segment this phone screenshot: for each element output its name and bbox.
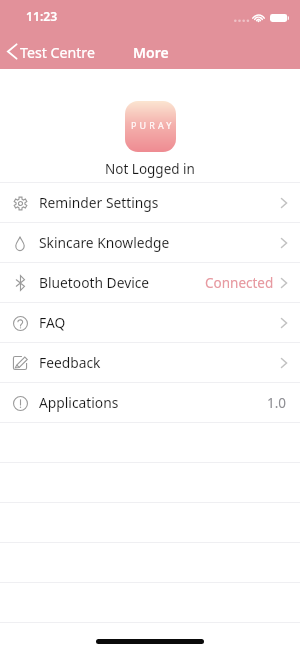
staticText: PURAY xyxy=(131,119,175,131)
button[interactable]: Applications xyxy=(0,383,300,422)
staticText: 11:23 xyxy=(26,8,58,25)
staticText: Bluetooth Device xyxy=(39,273,150,292)
staticText: Applications xyxy=(39,393,119,412)
staticText: Reminder Settings xyxy=(39,193,159,212)
staticText: Not Logged in xyxy=(105,160,195,178)
staticText: Skincare Knowledge xyxy=(39,233,170,252)
staticText: More xyxy=(133,43,169,62)
staticText: Connected xyxy=(205,274,274,292)
staticText: Feedback xyxy=(39,353,101,372)
staticText: Test Centre xyxy=(20,43,95,62)
button[interactable]: Feedback xyxy=(0,343,300,382)
button[interactable]: Reminder Settings xyxy=(0,183,300,222)
button[interactable]: Bluetooth Device xyxy=(0,263,300,302)
button[interactable]: Skincare Knowledge xyxy=(0,223,300,262)
staticText: FAQ xyxy=(39,313,66,332)
button[interactable]: FAQ xyxy=(0,303,300,342)
button[interactable]: Test Centre xyxy=(0,43,103,62)
staticText: 1.0 xyxy=(267,394,287,412)
